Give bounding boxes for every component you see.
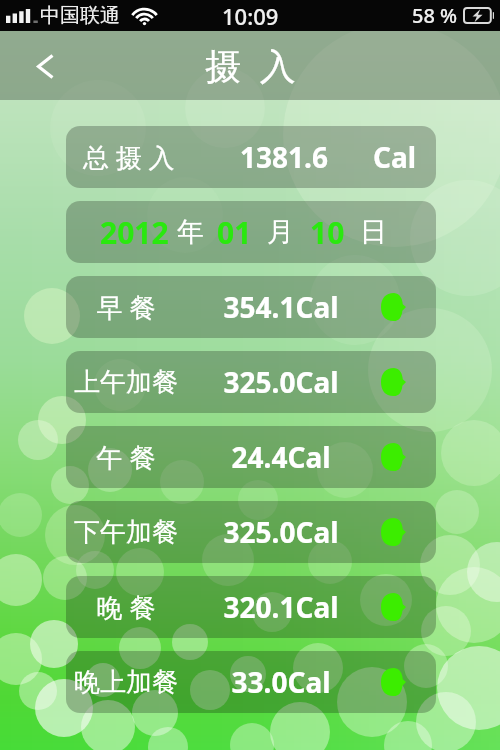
staticText: 上午加餐	[66, 366, 186, 399]
button[interactable]: 2012	[66, 201, 436, 263]
staticText: 58 %	[412, 2, 458, 29]
staticText: 10	[310, 212, 345, 253]
button[interactable]: 早 餐	[66, 276, 436, 338]
staticText: 总 摄 入	[83, 139, 175, 175]
staticText: 325.0Cal	[221, 513, 341, 551]
staticText: 24.4Cal	[221, 438, 341, 476]
staticText: 320.1Cal	[221, 588, 341, 626]
staticText: 摄 入	[205, 41, 296, 90]
staticText: 325.0Cal	[221, 363, 341, 401]
button[interactable]: 晚 餐	[66, 576, 436, 638]
staticText: 中国联通	[40, 3, 120, 28]
staticText: 日	[360, 215, 387, 249]
staticText: 早 餐	[66, 289, 186, 325]
button[interactable]: Back	[23, 44, 67, 88]
staticText: 晚 餐	[66, 589, 186, 625]
staticText: 01	[217, 212, 252, 253]
button[interactable]: 午 餐	[66, 426, 436, 488]
staticText: 33.0Cal	[221, 663, 341, 701]
staticText: 午 餐	[66, 439, 186, 475]
staticText: 10:09	[222, 1, 279, 31]
button[interactable]: 下午加餐	[66, 501, 436, 563]
button[interactable]: 上午加餐	[66, 351, 436, 413]
staticText: 354.1Cal	[221, 288, 341, 326]
button[interactable]: 晚上加餐	[66, 651, 436, 713]
button[interactable]: 总 摄 入	[66, 126, 436, 188]
staticText: 月	[267, 215, 294, 249]
staticText: 2012	[100, 212, 169, 253]
staticText: 年	[177, 215, 204, 249]
staticText: 1381.6	[240, 138, 328, 176]
staticText: 下午加餐	[66, 516, 186, 549]
staticText: Cal	[373, 138, 417, 176]
staticText: 晚上加餐	[66, 666, 186, 699]
